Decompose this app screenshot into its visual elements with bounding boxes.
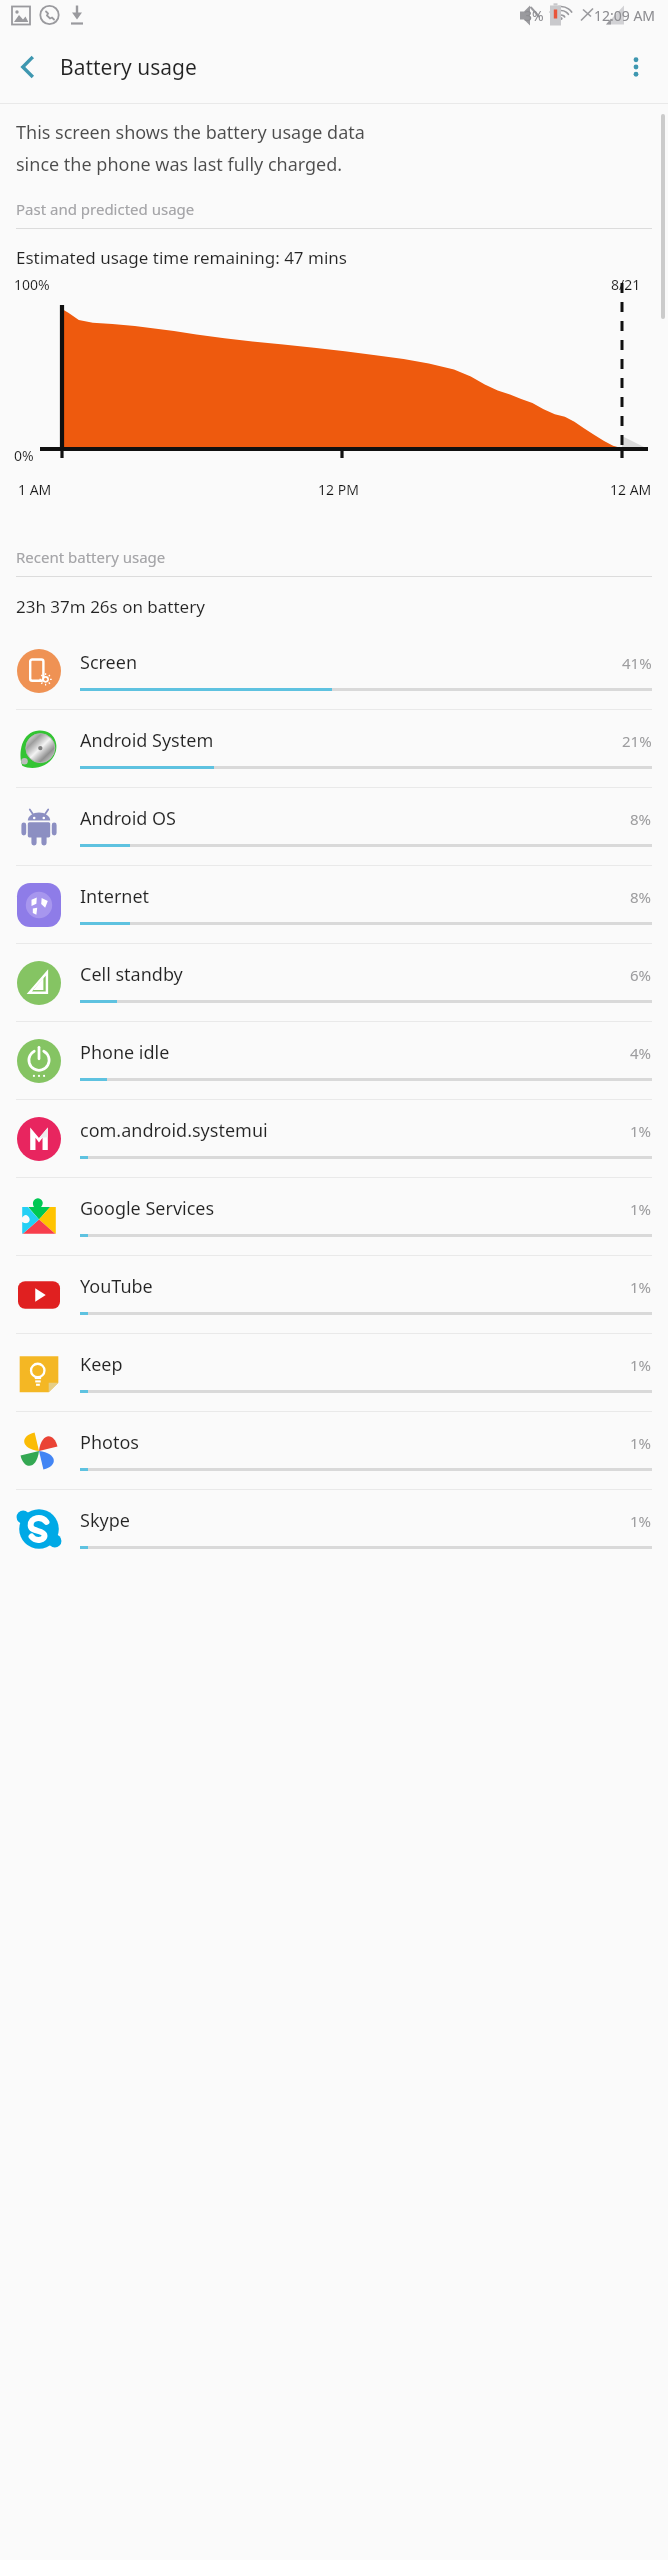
staticText: 1% (630, 1277, 652, 1297)
staticText: Android OS (80, 806, 630, 831)
staticText: 23h 37m 26s on battery (16, 595, 205, 618)
button[interactable]: Google Services (0, 1178, 668, 1255)
staticText: 41% (622, 653, 652, 673)
staticText: since the phone was last fully charged. (16, 152, 343, 177)
staticText: Photos (80, 1430, 630, 1455)
button[interactable]: Back (4, 43, 52, 91)
staticText: Estimated usage time remaining: 47 mins (16, 246, 347, 269)
staticText: 12:09 AM (594, 6, 656, 25)
staticText: Phone idle (80, 1040, 630, 1065)
staticText: 3% (524, 6, 544, 25)
staticText: Android System (80, 728, 622, 753)
staticText: 12 AM (610, 480, 652, 499)
button[interactable]: Cell standby (0, 944, 668, 1021)
staticText: 8/21 (611, 275, 641, 294)
staticText: 12 PM (318, 480, 359, 499)
staticText: This screen shows the battery usage data (16, 120, 365, 145)
button[interactable]: com.android.systemui (0, 1100, 668, 1177)
staticText: 8% (630, 887, 652, 907)
button[interactable]: Phone idle (0, 1022, 668, 1099)
staticText: Keep (80, 1352, 630, 1377)
button[interactable]: Android System (0, 710, 668, 787)
button[interactable]: Android OS (0, 788, 668, 865)
staticText: Google Services (80, 1196, 630, 1221)
staticText: YouTube (80, 1274, 630, 1299)
button[interactable]: Photos (0, 1412, 668, 1489)
staticText: Battery usage (60, 53, 197, 82)
button[interactable]: Screen (0, 632, 668, 709)
staticText: Recent battery usage (16, 547, 166, 567)
staticText: Cell standby (80, 962, 630, 987)
button[interactable]: Skype (0, 1490, 668, 1567)
staticText: 1% (630, 1433, 652, 1453)
button[interactable]: YouTube (0, 1256, 668, 1333)
button[interactable]: More options (612, 43, 660, 91)
staticText: Screen (80, 650, 622, 675)
staticText: 6% (630, 965, 652, 985)
staticText: Internet (80, 884, 630, 909)
staticText: 1% (630, 1355, 652, 1375)
staticText: 1% (630, 1199, 652, 1219)
staticText: 100% (14, 275, 50, 294)
staticText: 1% (630, 1121, 652, 1141)
staticText: Past and predicted usage (16, 199, 195, 219)
staticText: 4% (630, 1043, 652, 1063)
staticText: 8% (630, 809, 652, 829)
button[interactable]: Internet (0, 866, 668, 943)
staticText: com.android.systemui (80, 1118, 630, 1143)
staticText: 1% (630, 1511, 652, 1531)
staticText: Skype (80, 1508, 630, 1533)
staticText: 0% (14, 446, 34, 465)
button[interactable]: Keep (0, 1334, 668, 1411)
staticText: 21% (622, 731, 652, 751)
staticText: 1 AM (18, 480, 52, 499)
